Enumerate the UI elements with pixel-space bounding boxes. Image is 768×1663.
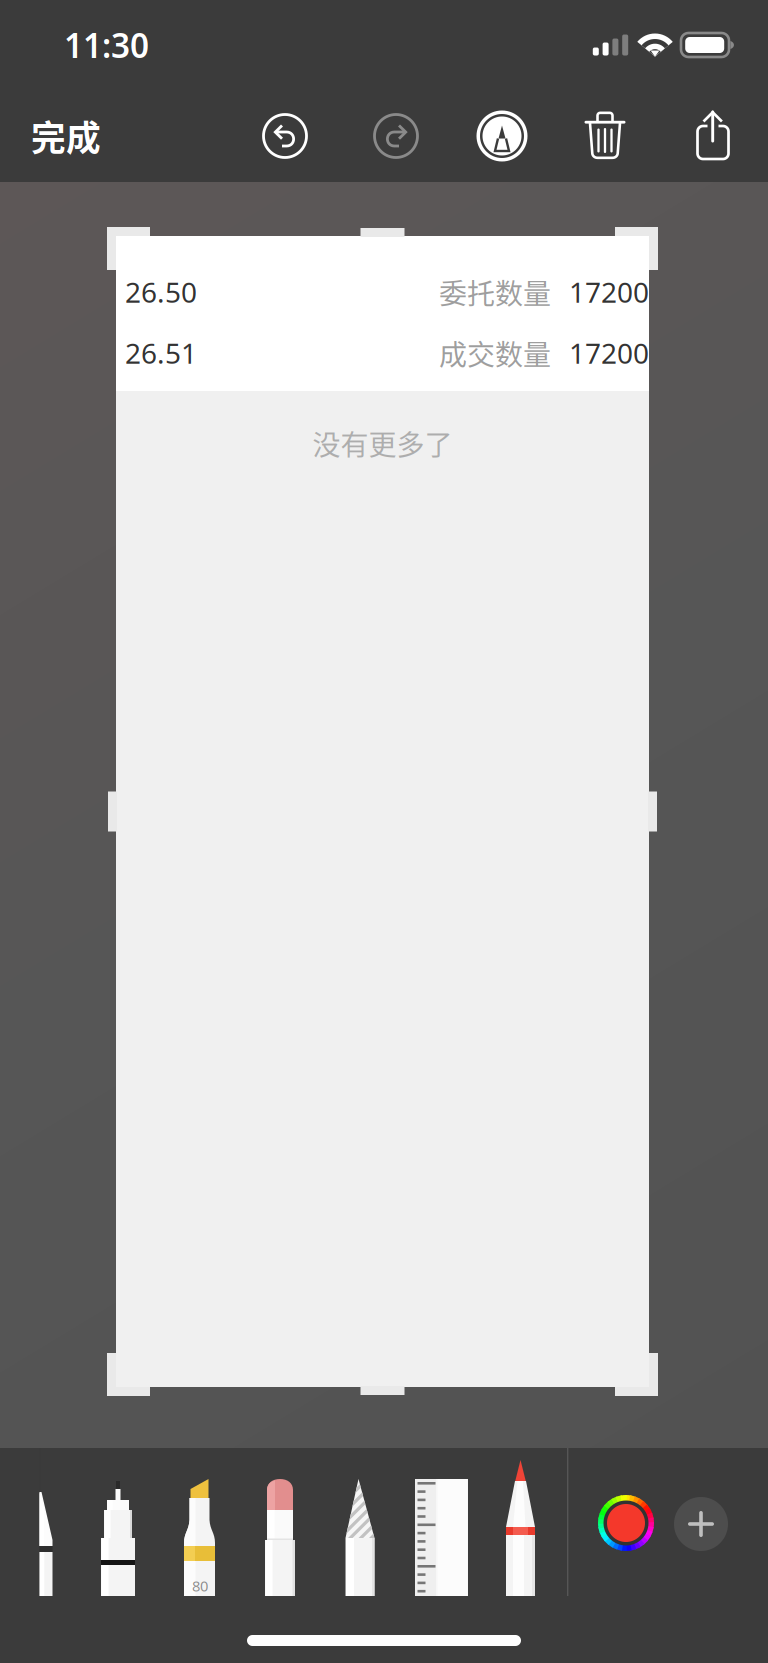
staticText: 26.51 xyxy=(125,334,197,372)
button[interactable]: 完成 xyxy=(31,90,141,182)
button[interactable]: Highlighter xyxy=(180,1448,224,1596)
button[interactable]: Pencil xyxy=(341,1448,383,1596)
staticText: 80 xyxy=(192,1576,208,1595)
button[interactable]: Delete xyxy=(559,90,651,182)
staticText: 26.50 xyxy=(125,273,197,311)
button[interactable]: Redo xyxy=(350,90,442,182)
staticText: 成交数量 xyxy=(439,333,551,373)
staticText: 完成 xyxy=(31,111,101,161)
button[interactable]: Undo xyxy=(239,90,331,182)
button[interactable]: Pen xyxy=(30,1448,62,1596)
button[interactable]: Add tool xyxy=(674,1497,728,1551)
button[interactable]: Share xyxy=(667,90,759,182)
button[interactable]: Marker xyxy=(98,1448,140,1596)
button[interactable]: Red pen xyxy=(502,1448,540,1596)
staticText: 17200 xyxy=(569,273,649,311)
button[interactable]: Colour xyxy=(598,1495,654,1551)
button[interactable]: Markup xyxy=(456,90,548,182)
button[interactable]: Ruler xyxy=(414,1448,468,1596)
staticText: 没有更多了 xyxy=(312,423,452,463)
staticText: 委托数量 xyxy=(439,272,551,312)
staticText: 11:30 xyxy=(64,23,149,67)
staticText: 17200 xyxy=(569,334,649,372)
button[interactable]: Eraser xyxy=(262,1448,302,1596)
